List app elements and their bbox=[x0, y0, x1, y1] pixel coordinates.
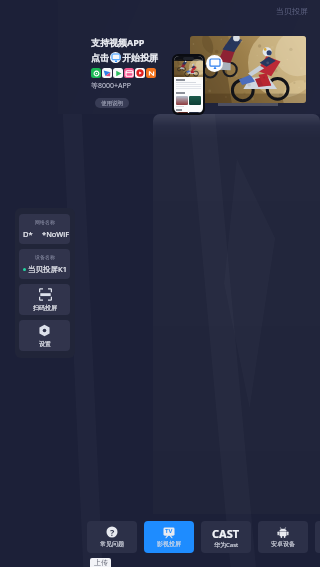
staticText: 上传 bbox=[94, 558, 108, 567]
button[interactable]: 安卓设备 bbox=[258, 521, 308, 553]
staticText: *NoWiF bbox=[42, 229, 70, 239]
staticText: 使用说明 bbox=[101, 100, 123, 107]
staticText: ? bbox=[110, 526, 115, 538]
button[interactable]: 使用说明 bbox=[95, 98, 129, 108]
staticText: TV bbox=[165, 527, 173, 535]
staticText: 华为Cast bbox=[214, 541, 239, 549]
staticText: 设置 bbox=[39, 340, 51, 348]
button[interactable]: 设置 bbox=[19, 320, 70, 351]
button[interactable]: CAST bbox=[201, 521, 251, 553]
staticText: 常见问题 bbox=[100, 540, 124, 548]
button[interactable]: 上传 bbox=[90, 558, 111, 567]
button[interactable]: TV bbox=[144, 521, 194, 553]
staticText: 影视投屏 bbox=[157, 540, 181, 548]
staticText: 开始投屏 bbox=[122, 52, 158, 63]
staticText: 网络名称 bbox=[35, 219, 55, 225]
staticText: 当贝投屏 bbox=[276, 6, 308, 16]
staticText: 当贝投屏K1 bbox=[28, 264, 67, 274]
staticText: 等8000+APP bbox=[91, 81, 131, 91]
staticText: 安卓设备 bbox=[271, 540, 295, 548]
staticText: 点击 bbox=[91, 52, 109, 63]
button[interactable]: ? bbox=[87, 521, 137, 553]
staticText: 支持视频APP bbox=[91, 36, 145, 48]
staticText: CAST bbox=[212, 526, 240, 541]
staticText: D* bbox=[23, 229, 33, 239]
staticText: 扫码投屏 bbox=[33, 304, 57, 312]
button[interactable]: 网络名称 bbox=[19, 214, 70, 244]
staticText: 设备名称 bbox=[35, 254, 55, 260]
button[interactable]: 扫码投屏 bbox=[19, 284, 70, 315]
button[interactable]: 设备名称 bbox=[19, 249, 70, 279]
